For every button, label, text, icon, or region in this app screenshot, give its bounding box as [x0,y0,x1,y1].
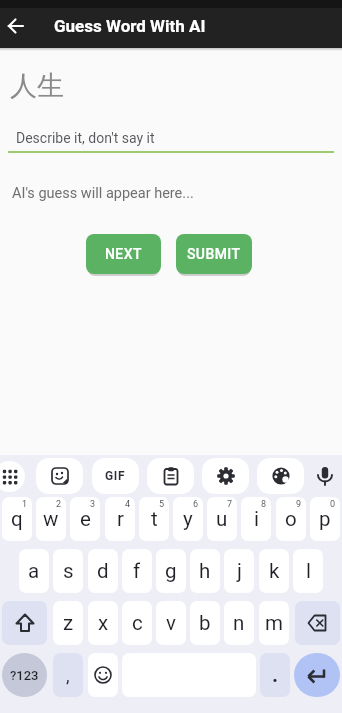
staticText: o [285,507,297,531]
button[interactable]: u [207,497,237,541]
staticText: a [28,559,40,583]
staticText: Describe it, don't say it [16,130,155,146]
staticText: 8 [261,499,267,510]
button[interactable]: j [224,549,254,593]
staticText: l [306,559,311,583]
staticText: 2 [56,499,62,510]
button[interactable]: t [139,497,169,541]
button[interactable] [257,458,304,494]
button[interactable]: k [259,549,289,593]
button[interactable]: SUBMIT [176,234,252,274]
staticText: c [132,611,143,635]
staticText: j [237,559,242,583]
button[interactable] [36,458,83,494]
button[interactable]: a [19,549,49,593]
staticText: z [63,611,74,635]
button[interactable] [8,124,334,153]
button[interactable] [313,464,337,488]
staticText: n [233,611,245,635]
staticText: g [165,559,177,583]
button[interactable]: o [276,497,306,541]
staticText: 1 [22,499,28,510]
staticText: 人生 [10,69,64,103]
button[interactable]: GIF [92,458,139,494]
staticText: 9 [296,499,302,510]
staticText: t [151,507,158,531]
staticText: v [166,611,176,635]
staticText: f [133,559,141,583]
button[interactable] [147,458,194,494]
staticText: 3 [90,499,96,510]
button[interactable]: . [260,653,290,697]
button[interactable]: c [122,601,152,645]
staticText: 7 [227,499,233,510]
staticText: e [80,507,91,531]
staticText: SUBMIT [187,246,241,262]
button[interactable] [294,653,340,697]
button[interactable]: e [70,497,100,541]
staticText: i [254,507,259,531]
staticText: m [265,611,283,635]
staticText: 5 [159,499,165,510]
staticText: x [98,611,109,635]
staticText: 4 [125,499,131,510]
button[interactable]: i [241,497,271,541]
button[interactable]: v [156,601,186,645]
button[interactable] [2,601,47,645]
staticText: Guess Word With AI [54,16,206,36]
button[interactable]: h [190,549,220,593]
staticText: p [319,507,331,531]
staticText: 0 [330,499,336,510]
button[interactable] [295,601,340,645]
staticText: d [97,559,109,583]
staticText: . [272,663,279,688]
button[interactable]: , [53,653,83,697]
staticText: NEXT [105,246,142,262]
button[interactable]: d [88,549,118,593]
staticText: ?123 [10,668,39,683]
button[interactable]: ?123 [2,653,47,697]
staticText: h [199,559,211,583]
button[interactable] [88,653,118,697]
button[interactable]: m [259,601,289,645]
staticText: u [216,507,228,531]
button[interactable]: x [88,601,118,645]
staticText: b [199,611,211,635]
staticText: GIF [105,469,126,483]
button[interactable]: y [173,497,203,541]
button[interactable]: f [122,549,152,593]
button[interactable]: w [36,497,66,541]
button[interactable]: NEXT [86,234,161,274]
button[interactable]: z [53,601,83,645]
staticText: y [183,507,193,531]
button[interactable] [0,461,25,492]
staticText: 6 [193,499,199,510]
button[interactable] [202,458,249,494]
staticText: s [63,559,74,583]
staticText: AI's guess will appear here... [12,185,194,202]
staticText: k [269,559,280,583]
button[interactable]: r [105,497,135,541]
button[interactable] [0,6,32,46]
button[interactable]: n [224,601,254,645]
button[interactable]: b [190,601,220,645]
button[interactable]: q [2,497,32,541]
button[interactable]: s [53,549,83,593]
staticText: q [11,507,23,531]
button[interactable]: g [156,549,186,593]
staticText: r [117,507,124,531]
button[interactable]: l [293,549,323,593]
staticText: w [43,507,59,531]
button[interactable]: p [310,497,340,541]
staticText: , [66,665,70,686]
